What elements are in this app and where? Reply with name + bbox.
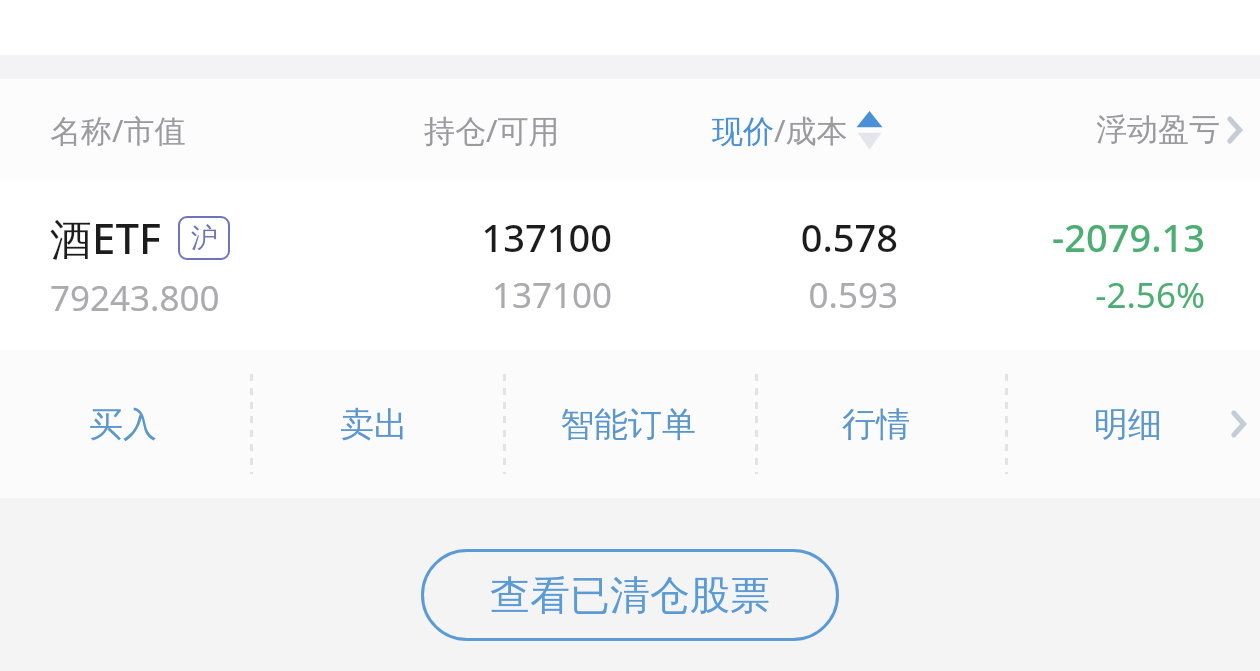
staticText: 137100	[481, 211, 612, 263]
staticText: 0.593	[808, 271, 898, 319]
staticText: 查看已清仓股票	[490, 570, 770, 620]
button[interactable]: 查看已清仓股票	[421, 549, 839, 641]
staticText: 智能订单	[560, 403, 696, 446]
other: More actions	[1226, 405, 1252, 443]
button[interactable]: 智能订单	[538, 350, 718, 498]
button[interactable]: 酒ETF	[0, 180, 1260, 350]
staticText: 137100	[491, 271, 612, 319]
button[interactable]: 明细	[1038, 350, 1218, 498]
staticText: 明细	[1094, 403, 1162, 446]
staticText: 持仓/可用	[424, 109, 560, 151]
staticText: 现价/成本	[712, 109, 848, 151]
button[interactable]: 行情	[786, 350, 966, 498]
button[interactable]: 买入	[33, 350, 213, 498]
staticText: 沪	[191, 221, 218, 255]
staticText: 0.578	[800, 211, 898, 263]
staticText: 79243.800	[50, 274, 220, 322]
staticText: -2.56%	[1095, 271, 1205, 319]
staticText: 酒ETF	[50, 209, 162, 266]
button[interactable]: 卖出	[284, 350, 464, 498]
staticText: 名称/市值	[50, 109, 186, 151]
staticText: 浮动盈亏	[1096, 110, 1220, 149]
staticText: -2079.13	[1052, 211, 1205, 263]
staticText: 行情	[842, 403, 910, 446]
staticText: 卖出	[340, 403, 408, 446]
other: More columns	[1222, 111, 1248, 149]
staticText: 买入	[89, 403, 157, 446]
